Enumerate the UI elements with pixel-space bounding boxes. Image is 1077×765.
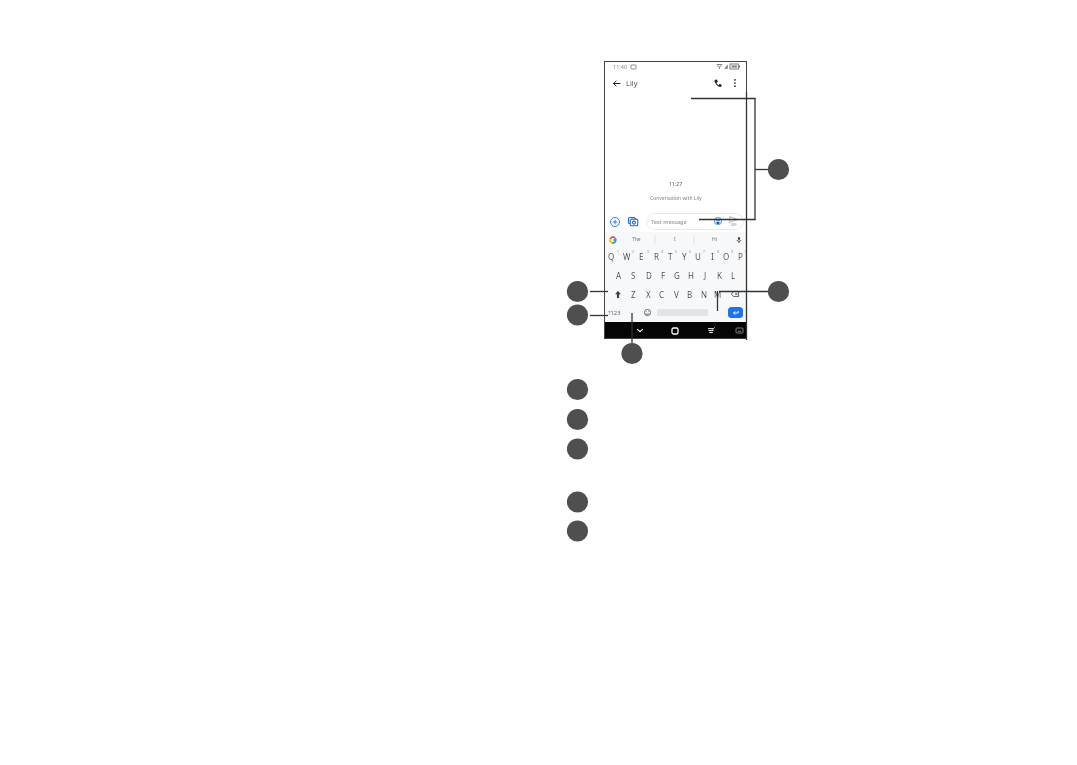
button[interactable]: Back bbox=[611, 78, 621, 88]
button[interactable]: Enter bbox=[728, 307, 743, 318]
button[interactable]: Text message bbox=[646, 213, 744, 230]
staticText: 0 bbox=[745, 249, 747, 254]
button[interactable]: P bbox=[733, 247, 747, 266]
button[interactable]: J bbox=[698, 266, 712, 285]
staticText: E bbox=[639, 251, 644, 262]
button[interactable]: V bbox=[669, 285, 683, 303]
staticText: K bbox=[717, 270, 722, 281]
button[interactable]: I bbox=[655, 232, 694, 247]
staticText: T bbox=[668, 251, 673, 262]
staticText: D bbox=[646, 270, 652, 281]
button[interactable]: F bbox=[656, 266, 670, 285]
button[interactable]: Shift bbox=[609, 285, 626, 303]
button[interactable]: D bbox=[641, 266, 656, 285]
staticText: Lily bbox=[626, 78, 638, 88]
staticText: I bbox=[711, 251, 714, 262]
staticText: A bbox=[616, 270, 622, 281]
button[interactable]: A bbox=[611, 266, 626, 285]
button[interactable]: Emoji picker bbox=[713, 213, 722, 229]
staticText: 9 bbox=[731, 249, 733, 254]
staticText: 4 bbox=[661, 249, 663, 254]
button[interactable]: L bbox=[726, 266, 740, 285]
staticText: 1 bbox=[617, 249, 619, 254]
button[interactable]: Camera bbox=[626, 215, 639, 228]
button[interactable]: Send bbox=[728, 213, 739, 230]
staticText: O bbox=[723, 251, 730, 262]
button[interactable]: K bbox=[712, 266, 726, 285]
button[interactable]: E bbox=[634, 247, 649, 266]
button[interactable]: W bbox=[619, 247, 634, 266]
staticText: Hi bbox=[712, 236, 717, 243]
button[interactable]: N bbox=[697, 285, 711, 303]
staticText: S bbox=[631, 270, 636, 281]
staticText: X bbox=[646, 289, 651, 300]
button[interactable]: I bbox=[705, 247, 719, 266]
staticText: W bbox=[623, 251, 631, 262]
button[interactable]: Add attachment bbox=[608, 215, 621, 228]
button[interactable]: The bbox=[617, 232, 655, 247]
staticText: R bbox=[654, 251, 659, 262]
staticText: SMS bbox=[731, 223, 737, 227]
button[interactable]: Home bbox=[668, 324, 681, 337]
staticText: M bbox=[714, 289, 722, 300]
button[interactable]: Hi bbox=[694, 232, 734, 247]
staticText: 8 bbox=[717, 249, 719, 254]
staticText: U bbox=[695, 251, 701, 262]
button[interactable]: Call bbox=[712, 77, 724, 89]
button[interactable]: U bbox=[691, 247, 705, 266]
staticText: H bbox=[688, 270, 694, 281]
staticText: I bbox=[674, 236, 676, 243]
button[interactable]: Backspace bbox=[725, 285, 744, 303]
staticText: J bbox=[704, 270, 707, 281]
staticText: 7 bbox=[703, 249, 705, 254]
staticText: N bbox=[701, 289, 708, 300]
button[interactable]: G bbox=[670, 266, 684, 285]
staticText: ?123 bbox=[608, 309, 621, 317]
button[interactable]: Recents bbox=[704, 324, 717, 337]
button[interactable]: B bbox=[683, 285, 697, 303]
staticText: Text message bbox=[651, 218, 687, 226]
button[interactable]: Z bbox=[626, 285, 641, 303]
staticText: F bbox=[661, 270, 666, 281]
staticText: L bbox=[731, 270, 736, 281]
button[interactable]: Voice input bbox=[734, 235, 743, 244]
staticText: P bbox=[738, 251, 743, 262]
button[interactable]: X bbox=[641, 285, 655, 303]
button[interactable]: S bbox=[626, 266, 641, 285]
staticText: Q bbox=[608, 251, 615, 262]
button[interactable]: Switch keyboard bbox=[733, 324, 746, 337]
button[interactable]: T bbox=[663, 247, 677, 266]
button[interactable]: Q bbox=[604, 247, 619, 266]
button[interactable]: R bbox=[649, 247, 663, 266]
button[interactable]: H bbox=[684, 266, 698, 285]
button[interactable]: M bbox=[711, 285, 725, 303]
staticText: 3 bbox=[647, 249, 649, 254]
staticText: 2 bbox=[632, 249, 634, 254]
button[interactable]: ?123 bbox=[608, 303, 624, 322]
staticText: V bbox=[674, 289, 679, 300]
staticText: 11:40 bbox=[613, 63, 628, 70]
staticText: 6 bbox=[689, 249, 691, 254]
staticText: C bbox=[659, 289, 665, 300]
button[interactable]: Y bbox=[677, 247, 691, 266]
staticText: Conversation with Lily bbox=[650, 195, 702, 202]
button[interactable]: Hide keyboard bbox=[633, 324, 646, 337]
button[interactable]: Emoji bbox=[642, 307, 653, 318]
staticText: The bbox=[632, 236, 641, 243]
button[interactable]: O bbox=[719, 247, 733, 266]
staticText: B bbox=[687, 289, 693, 300]
staticText: Z bbox=[631, 289, 636, 300]
button[interactable]: More options bbox=[729, 77, 741, 89]
staticText: 11:27 bbox=[669, 180, 683, 187]
staticText: 5 bbox=[675, 249, 677, 254]
staticText: G bbox=[674, 270, 680, 281]
button[interactable]: C bbox=[655, 285, 669, 303]
staticText: Y bbox=[682, 251, 687, 262]
